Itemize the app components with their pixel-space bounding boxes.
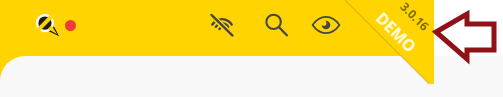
- staticText: 3.0.16: [397, 0, 433, 34]
- button[interactable]: App logo: [29, 9, 59, 39]
- button[interactable]: Search: [256, 5, 296, 45]
- staticText: DEMO: [371, 7, 421, 57]
- button[interactable]: Offline: [202, 5, 242, 45]
- button[interactable]: Preview: [306, 5, 346, 45]
